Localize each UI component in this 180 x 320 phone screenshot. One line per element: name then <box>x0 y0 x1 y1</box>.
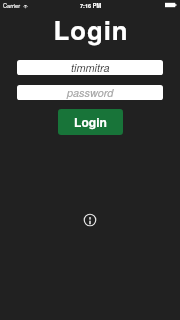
button[interactable]: password <box>17 85 163 100</box>
staticText: timmitra <box>71 60 110 75</box>
button[interactable]: Login <box>58 109 123 135</box>
staticText: Login <box>74 113 107 130</box>
staticText: password <box>67 85 114 100</box>
staticText: Carrier <box>3 2 21 10</box>
staticText: 7:16 PM <box>80 2 102 10</box>
button[interactable]: timmitra <box>17 60 163 75</box>
button[interactable]: Info <box>82 212 98 228</box>
staticText: Login <box>1 11 180 48</box>
